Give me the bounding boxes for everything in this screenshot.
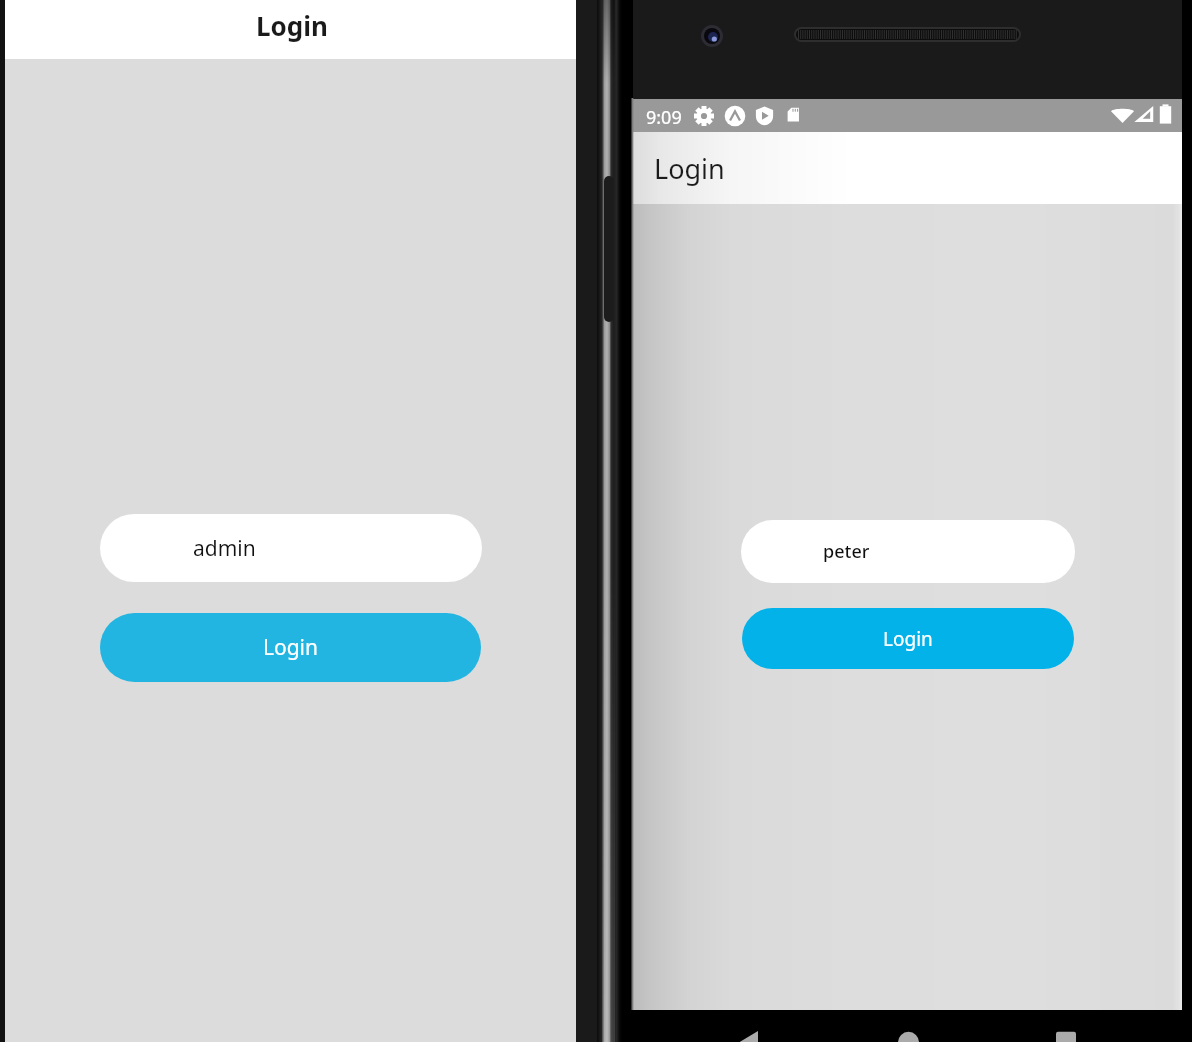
- staticText: Login: [654, 150, 725, 187]
- staticText: 9:09: [646, 105, 682, 130]
- button[interactable]: Recent apps: [1038, 1010, 1094, 1042]
- staticText: Login: [256, 8, 328, 43]
- button[interactable]: Back: [731, 1010, 787, 1042]
- button[interactable]: admin: [100, 514, 482, 582]
- staticText: Login: [883, 626, 933, 652]
- button[interactable]: Login: [742, 608, 1074, 669]
- staticText: peter: [823, 539, 870, 564]
- button[interactable]: Home: [881, 1010, 937, 1042]
- button[interactable]: Login: [100, 613, 481, 682]
- staticText: Login: [263, 633, 319, 662]
- button[interactable]: peter: [741, 520, 1075, 583]
- staticText: admin: [193, 534, 256, 563]
